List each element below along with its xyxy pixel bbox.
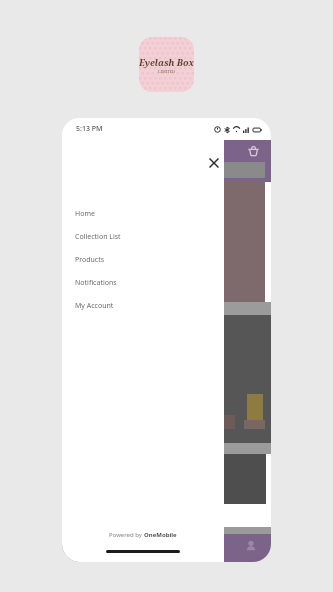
staticText: Products (75, 255, 105, 265)
staticText: Home (75, 209, 95, 219)
button[interactable]: Collection List (62, 225, 224, 248)
staticText: OneMobile (144, 531, 177, 539)
staticText: My Account (75, 301, 114, 311)
button[interactable]: Notifications (62, 271, 224, 294)
staticText: Collection List (75, 232, 121, 242)
staticText: Powered by (109, 531, 144, 539)
staticText: 5:13 PM (76, 124, 103, 134)
button[interactable]: Products (62, 248, 224, 271)
button[interactable]: Eyelash Box app icon (139, 37, 194, 92)
button[interactable]: Close menu (203, 152, 225, 174)
button[interactable]: Account (245, 540, 257, 552)
button[interactable]: My Account (62, 294, 224, 317)
button[interactable]: Home (62, 202, 224, 225)
staticText: LIMITED (158, 69, 176, 74)
button[interactable]: Cart (247, 145, 260, 158)
staticText: Eyelash Box (139, 56, 194, 68)
staticText: Notifications (75, 278, 117, 288)
